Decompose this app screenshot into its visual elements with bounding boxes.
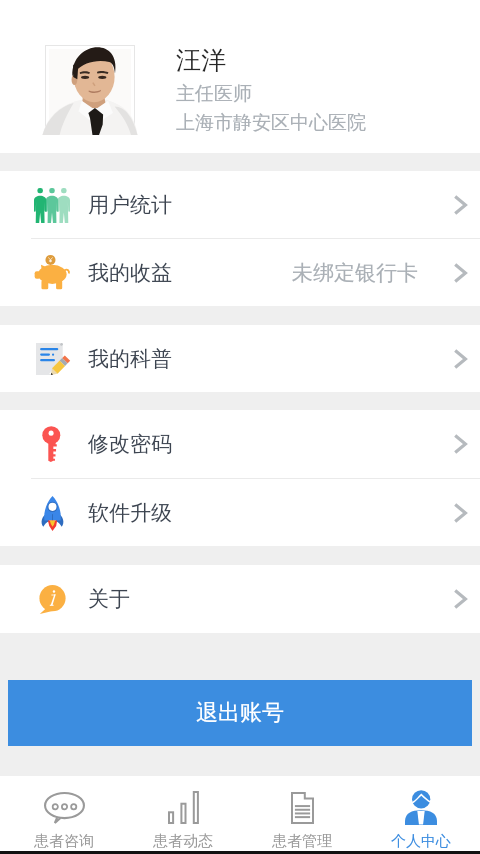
staticText: 关于 (88, 586, 130, 612)
staticText: 患者动态 (153, 832, 213, 851)
staticText: 修改密码 (88, 431, 172, 457)
button[interactable]: 汪洋 (0, 0, 480, 153)
staticText: 个人中心 (391, 832, 451, 851)
staticText: 软件升级 (88, 500, 172, 526)
button[interactable]: 修改密码 (0, 410, 480, 478)
button[interactable]: 我的科普 (0, 325, 480, 392)
staticText: 我的收益 (88, 260, 172, 286)
staticText: 上海市静安区中心医院 (176, 111, 366, 135)
button[interactable]: 退出账号 (8, 680, 472, 746)
button[interactable]: 软件升级 (0, 479, 480, 546)
staticText: 患者管理 (272, 832, 332, 851)
button[interactable]: 患者管理 (242, 776, 361, 851)
staticText: 主任医师 (176, 82, 252, 106)
button[interactable]: 患者咨询 (5, 776, 123, 851)
staticText: 患者咨询 (34, 832, 94, 851)
button[interactable]: 我的收益 (0, 239, 480, 306)
button[interactable]: 关于 (0, 565, 480, 633)
staticText: 用户统计 (88, 192, 172, 218)
staticText: 未绑定银行卡 (292, 260, 418, 286)
staticText: 汪洋 (176, 45, 226, 76)
staticText: 我的科普 (88, 346, 172, 372)
staticText: 退出账号 (196, 699, 284, 727)
button[interactable]: 用户统计 (0, 171, 480, 238)
button[interactable]: 患者动态 (123, 776, 242, 851)
button[interactable]: 个人中心 (361, 776, 480, 851)
